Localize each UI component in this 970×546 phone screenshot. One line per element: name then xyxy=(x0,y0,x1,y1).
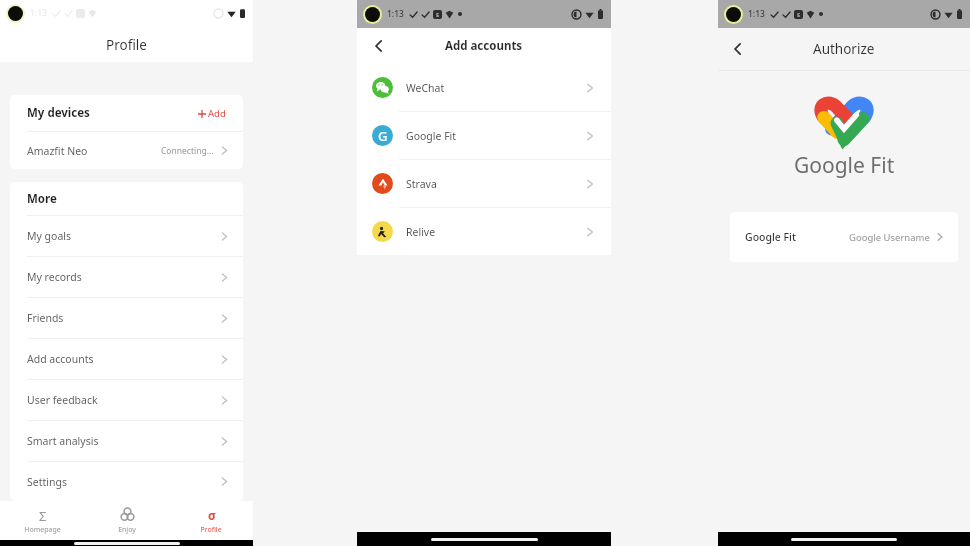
staticText: Settings xyxy=(27,475,67,489)
button[interactable]: Back xyxy=(726,37,750,61)
staticText: G xyxy=(378,127,388,145)
button[interactable]: G xyxy=(357,112,611,159)
staticText: 1:13 xyxy=(748,8,765,20)
staticText: My goals xyxy=(27,229,72,243)
staticText: Profile xyxy=(106,36,147,54)
staticText: My records xyxy=(27,270,82,284)
button[interactable]: σ xyxy=(169,501,253,540)
button[interactable]: Back xyxy=(367,34,391,58)
staticText: Σ xyxy=(39,507,47,522)
staticText: 1:13 xyxy=(387,8,404,20)
button[interactable]: User feedback xyxy=(10,380,243,420)
button[interactable]: Strava xyxy=(357,160,611,207)
button[interactable]: WeChat xyxy=(357,64,611,111)
staticText: Homepage xyxy=(24,525,61,535)
staticText: Google Fit xyxy=(406,129,457,143)
button[interactable]: Add accounts xyxy=(10,339,243,379)
staticText: My devices xyxy=(27,105,90,121)
button[interactable]: Relive xyxy=(357,208,611,255)
button[interactable]: Friends xyxy=(10,298,243,338)
staticText: Enjoy xyxy=(118,525,136,535)
staticText: Friends xyxy=(27,311,64,325)
staticText: Connecting... xyxy=(161,145,214,157)
staticText: More xyxy=(27,191,57,207)
staticText: Strava xyxy=(406,177,437,191)
button[interactable]: My records xyxy=(10,257,243,297)
staticText: Smart analysis xyxy=(27,434,99,448)
staticText: Profile xyxy=(200,525,222,535)
staticText: 1:13 xyxy=(30,7,47,19)
button[interactable]: My devices xyxy=(10,95,243,131)
staticText: Google Fit xyxy=(794,151,895,180)
staticText: Google Username xyxy=(849,231,930,244)
staticText: σ xyxy=(208,507,216,522)
button[interactable]: Amazfit Neo xyxy=(10,132,243,169)
staticText: E xyxy=(797,11,801,19)
staticText: User feedback xyxy=(27,393,98,407)
staticText: Add accounts xyxy=(27,352,94,366)
button[interactable]: My goals xyxy=(10,216,243,256)
button[interactable]: Smart analysis xyxy=(10,421,243,461)
staticText: Amazfit Neo xyxy=(27,144,88,158)
staticText: Authorize xyxy=(813,40,875,58)
staticText: Add xyxy=(208,107,226,120)
staticText: E xyxy=(436,11,440,19)
staticText: Add accounts xyxy=(445,38,523,54)
staticText: Google Fit xyxy=(745,230,796,244)
button[interactable]: Settings xyxy=(10,462,243,501)
staticText: Relive xyxy=(406,225,436,239)
staticText: WeChat xyxy=(406,81,445,95)
button[interactable]: Google Fit xyxy=(730,212,958,262)
button[interactable]: Enjoy xyxy=(85,501,169,540)
button[interactable]: Σ xyxy=(0,501,85,540)
